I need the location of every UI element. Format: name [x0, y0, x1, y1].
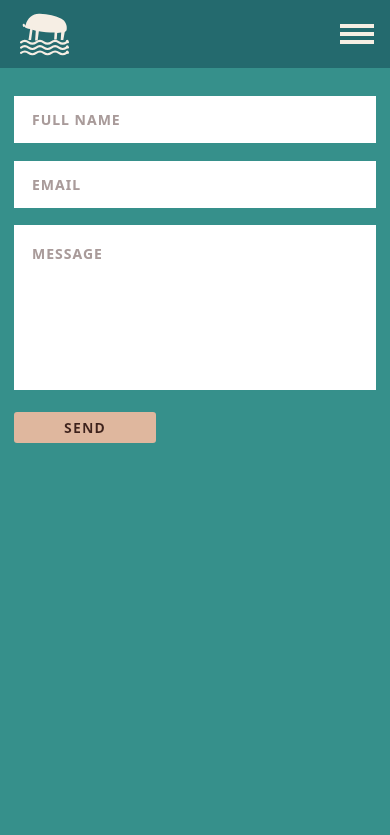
staticText: FULL NAME [32, 110, 121, 129]
button[interactable]: SEND [14, 412, 156, 443]
staticText: MESSAGE [32, 244, 103, 263]
button[interactable]: Home [21, 11, 68, 57]
button[interactable]: EMAIL [14, 161, 376, 208]
staticText: SEND [64, 418, 106, 437]
button[interactable]: MESSAGE [14, 225, 376, 390]
button[interactable]: FULL NAME [14, 96, 376, 143]
button[interactable]: Menu [336, 16, 378, 52]
staticText: EMAIL [32, 175, 82, 194]
